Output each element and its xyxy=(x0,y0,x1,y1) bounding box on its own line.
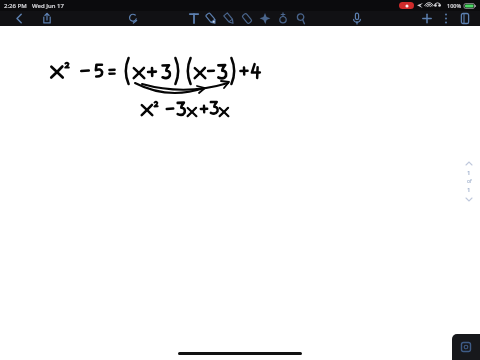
button[interactable]: Record audio xyxy=(348,11,366,26)
staticText: 1 xyxy=(467,186,471,194)
button[interactable]: Zoom xyxy=(292,11,310,26)
button[interactable]: Pages xyxy=(456,11,474,26)
button[interactable]: Shapes xyxy=(274,11,292,26)
button[interactable]: Page thumbnail xyxy=(452,334,480,360)
button[interactable]: Pen xyxy=(220,11,238,26)
button[interactable]: Back xyxy=(10,11,28,26)
staticText: Wed Jun 17 xyxy=(32,2,64,10)
button[interactable]: Add page xyxy=(418,11,436,26)
button[interactable]: Select xyxy=(256,11,274,26)
button[interactable]: Page navigation xyxy=(461,161,477,202)
button[interactable]: Text tool xyxy=(186,11,202,26)
button[interactable]: Highlighter xyxy=(202,11,220,26)
staticText: 2:26 PM xyxy=(4,2,27,10)
staticText: 1 xyxy=(467,169,471,177)
staticText: 100% xyxy=(447,2,462,9)
button[interactable]: Undo xyxy=(124,11,142,26)
staticText: of xyxy=(467,178,472,185)
button[interactable]: Share xyxy=(38,11,56,26)
button[interactable]: Eraser xyxy=(238,11,256,26)
button[interactable]: More options xyxy=(440,11,452,26)
